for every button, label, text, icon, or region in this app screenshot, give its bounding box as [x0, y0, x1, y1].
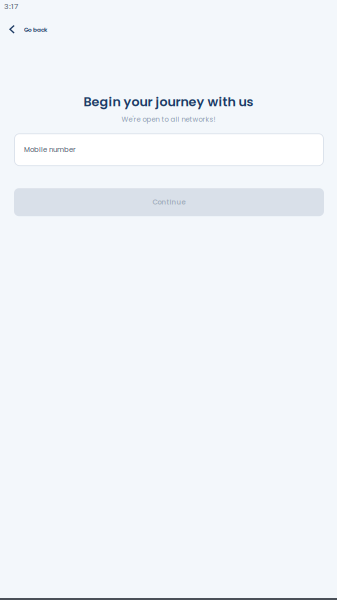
button[interactable]: Continue — [14, 188, 324, 216]
staticText: We're open to all networks! — [121, 115, 215, 124]
staticText: 3:17 — [4, 1, 18, 12]
staticText: Continue — [152, 197, 185, 207]
button[interactable]: Mobile number — [14, 133, 324, 166]
button[interactable]: Go back — [0, 24, 337, 36]
staticText: Begin your journey with us — [83, 93, 253, 110]
staticText: Mobile number — [24, 145, 76, 154]
staticText: Go back — [24, 26, 47, 34]
